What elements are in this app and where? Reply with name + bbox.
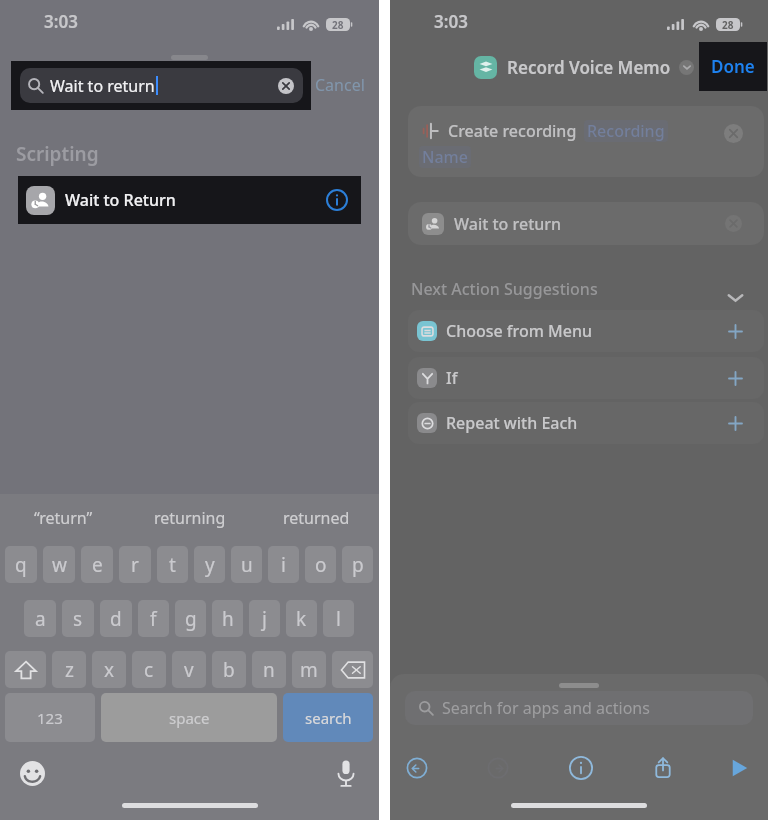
button[interactable]: r: [119, 546, 151, 583]
staticText: f: [150, 606, 157, 632]
button[interactable]: Done: [699, 42, 767, 91]
staticText: search: [305, 708, 352, 728]
button[interactable]: returned: [253, 494, 379, 542]
button[interactable]: Shift: [5, 651, 46, 688]
staticText: returned: [283, 507, 350, 529]
button[interactable]: w: [43, 546, 75, 583]
button[interactable]: o: [305, 546, 336, 583]
staticText: l: [336, 606, 341, 632]
button[interactable]: Record Voice Memo: [474, 54, 694, 80]
staticText: Choose from Menu: [446, 320, 593, 342]
button[interactable]: Remove action: [725, 215, 742, 232]
button[interactable]: k: [286, 600, 317, 637]
staticText: Search for apps and actions: [442, 697, 650, 719]
staticText: k: [296, 606, 307, 632]
button[interactable]: Backspace: [332, 651, 373, 688]
button[interactable]: Wait to Return: [18, 176, 361, 224]
button[interactable]: Add Repeat with Each: [727, 415, 744, 432]
button[interactable]: Add Choose from Menu: [727, 323, 744, 340]
button[interactable]: c: [132, 651, 166, 688]
button[interactable]: v: [172, 651, 206, 688]
staticText: x: [104, 657, 115, 683]
staticText: 123: [37, 708, 63, 728]
button[interactable]: Remove action: [724, 124, 743, 143]
button[interactable]: q: [5, 546, 37, 583]
staticText: Name: [422, 146, 468, 168]
button[interactable]: Emoji: [20, 761, 45, 786]
button[interactable]: g: [175, 600, 206, 637]
button[interactable]: l: [323, 600, 354, 637]
button[interactable]: Info: [560, 747, 602, 789]
staticText: h: [222, 606, 234, 632]
staticText: “return”: [34, 507, 93, 529]
staticText: Cancel: [315, 74, 365, 96]
button[interactable]: i: [268, 546, 299, 583]
button[interactable]: h: [212, 600, 243, 637]
button[interactable]: space: [101, 693, 277, 742]
button[interactable]: Run: [718, 747, 760, 789]
button[interactable]: e: [81, 546, 113, 583]
button[interactable]: “return”: [0, 494, 127, 542]
staticText: s: [73, 606, 83, 632]
button[interactable]: Wait to return: [11, 61, 311, 110]
staticText: Next Action Suggestions: [411, 278, 598, 300]
button[interactable]: Next Action Suggestions: [411, 277, 749, 301]
button[interactable]: Add If: [727, 370, 744, 387]
button[interactable]: j: [249, 600, 280, 637]
button[interactable]: Undo: [396, 747, 438, 789]
button[interactable]: t: [157, 546, 188, 583]
staticText: p: [352, 552, 364, 578]
button[interactable]: p: [342, 546, 373, 583]
staticText: If: [446, 367, 458, 389]
staticText: Scripting: [16, 141, 99, 167]
button[interactable]: Dictation: [337, 760, 355, 787]
button[interactable]: Details: [326, 189, 348, 211]
button[interactable]: Search for apps and actions: [405, 691, 753, 725]
staticText: Wait to Return: [65, 189, 176, 211]
button[interactable]: u: [231, 546, 262, 583]
staticText: o: [315, 552, 327, 578]
staticText: Done: [711, 55, 755, 78]
staticText: a: [35, 606, 46, 632]
button[interactable]: Wait to return: [408, 202, 764, 245]
button[interactable]: y: [194, 546, 225, 583]
button[interactable]: b: [212, 651, 246, 688]
staticText: Wait to return: [50, 75, 155, 97]
button[interactable]: n: [252, 651, 286, 688]
button[interactable]: Share: [642, 747, 684, 789]
staticText: m: [300, 657, 318, 683]
staticText: 3:03: [44, 10, 78, 33]
staticText: c: [144, 657, 154, 683]
staticText: u: [241, 552, 253, 578]
button[interactable]: a: [24, 600, 56, 637]
button[interactable]: d: [100, 600, 132, 637]
button[interactable]: returning: [127, 494, 253, 542]
staticText: r: [131, 552, 139, 578]
button[interactable]: s: [62, 600, 94, 637]
button[interactable]: search: [283, 693, 373, 742]
staticText: j: [262, 606, 267, 632]
staticText: 3:03: [434, 10, 468, 33]
staticText: e: [92, 552, 103, 578]
button[interactable]: z: [52, 651, 86, 688]
staticText: 28: [332, 18, 344, 31]
staticText: Recording: [587, 120, 665, 142]
button[interactable]: Choose from Menu: [408, 310, 764, 352]
button[interactable]: 123: [5, 693, 95, 742]
staticText: q: [15, 552, 27, 578]
staticText: space: [169, 708, 210, 728]
button[interactable]: If: [408, 357, 764, 399]
staticText: w: [52, 552, 67, 578]
staticText: y: [205, 552, 215, 578]
staticText: i: [281, 552, 286, 578]
button[interactable]: f: [138, 600, 169, 637]
button[interactable]: Repeat with Each: [408, 402, 764, 444]
button[interactable]: x: [92, 651, 126, 688]
button[interactable]: m: [292, 651, 326, 688]
staticText: d: [110, 606, 122, 632]
staticText: t: [169, 552, 176, 578]
button[interactable]: Cancel: [315, 74, 365, 96]
staticText: Record Voice Memo: [507, 56, 671, 79]
button[interactable]: Create recording: [408, 106, 764, 177]
